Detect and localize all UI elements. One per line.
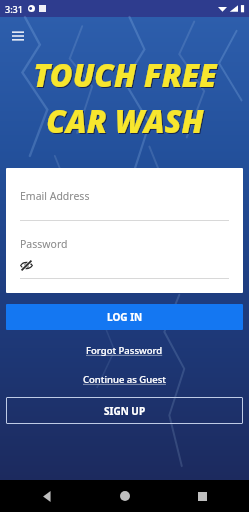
button[interactable]: Password — [20, 237, 68, 251]
button[interactable]: Open navigation menu — [7, 25, 29, 47]
button[interactable]: Email Address — [20, 189, 90, 203]
staticText: LOG IN — [107, 310, 143, 324]
button[interactable]: Back — [34, 483, 60, 509]
staticText: CAR WASH — [47, 101, 205, 143]
button[interactable]: Forgot Password — [82, 343, 167, 358]
button[interactable]: SIGN UP — [6, 397, 243, 424]
staticText: Forgot Password — [86, 344, 163, 357]
staticText: TOUCH FREE — [33, 54, 217, 96]
button[interactable]: Recent apps — [189, 483, 215, 509]
button[interactable]: Continue as Guest — [79, 372, 170, 387]
staticText: CAR WASH — [47, 101, 205, 143]
staticText: CAR WASH — [46, 100, 204, 142]
staticText: Continue as Guest — [83, 373, 166, 386]
button[interactable]: Home — [112, 483, 138, 509]
staticText: TOUCH FREE — [34, 55, 218, 97]
staticText: TOUCH FREE — [34, 55, 218, 97]
staticText: 3:31 — [5, 3, 23, 15]
button[interactable]: Show password — [20, 257, 36, 273]
button[interactable]: LOG IN — [6, 304, 243, 330]
staticText: SIGN UP — [104, 404, 146, 418]
